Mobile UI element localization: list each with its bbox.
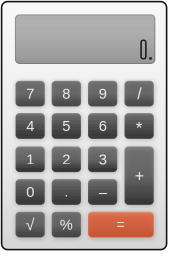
button[interactable]: Percent: [52, 212, 81, 237]
staticText: 7: [26, 85, 34, 102]
button[interactable]: 4: [15, 113, 45, 139]
button[interactable]: 0: [15, 179, 45, 205]
staticText: √: [26, 216, 35, 234]
button[interactable]: Decimal point: [52, 179, 81, 205]
button[interactable]: 2: [52, 146, 81, 172]
button[interactable]: Minus: [88, 179, 117, 205]
staticText: =: [116, 216, 125, 233]
staticText: 5: [62, 118, 70, 134]
button[interactable]: Square root: [15, 212, 45, 237]
button[interactable]: Divide: [124, 81, 154, 106]
button[interactable]: 5: [52, 113, 81, 139]
button[interactable]: 7: [15, 81, 45, 106]
staticText: –: [99, 184, 107, 200]
staticText: %: [60, 216, 73, 233]
button[interactable]: Plus: [124, 146, 154, 205]
staticText: 0.: [139, 36, 153, 64]
staticText: 0: [26, 184, 34, 200]
staticText: 8: [62, 85, 70, 102]
staticText: .: [64, 182, 68, 200]
staticText: 6: [99, 118, 107, 134]
staticText: +: [135, 167, 144, 185]
staticText: 3: [99, 151, 107, 167]
button[interactable]: 9: [88, 81, 117, 106]
staticText: 1: [26, 151, 34, 167]
button[interactable]: 3: [88, 146, 117, 172]
button[interactable]: Multiply: [124, 113, 154, 139]
staticText: 4: [26, 118, 34, 134]
button[interactable]: 6: [88, 113, 117, 139]
staticText: /: [137, 85, 141, 103]
button[interactable]: 1: [15, 146, 45, 172]
staticText: 2: [62, 151, 70, 167]
button[interactable]: Equals: [88, 212, 154, 237]
staticText: 9: [99, 85, 107, 102]
button[interactable]: 8: [52, 81, 81, 106]
staticText: *: [136, 118, 143, 138]
